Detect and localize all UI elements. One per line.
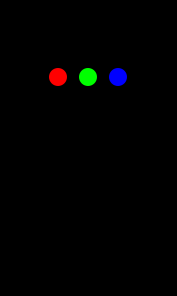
button[interactable] [79,68,97,86]
button[interactable] [109,68,127,86]
